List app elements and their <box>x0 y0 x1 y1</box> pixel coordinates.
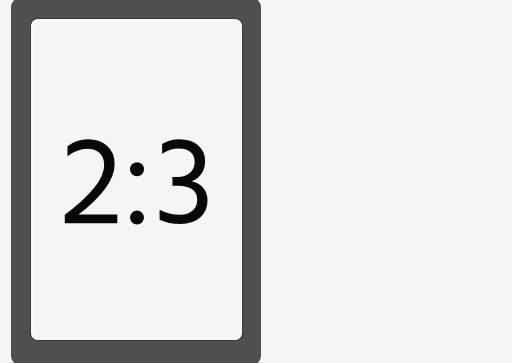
button[interactable]: Aspect ratio 2 to 3 <box>0 0 512 363</box>
